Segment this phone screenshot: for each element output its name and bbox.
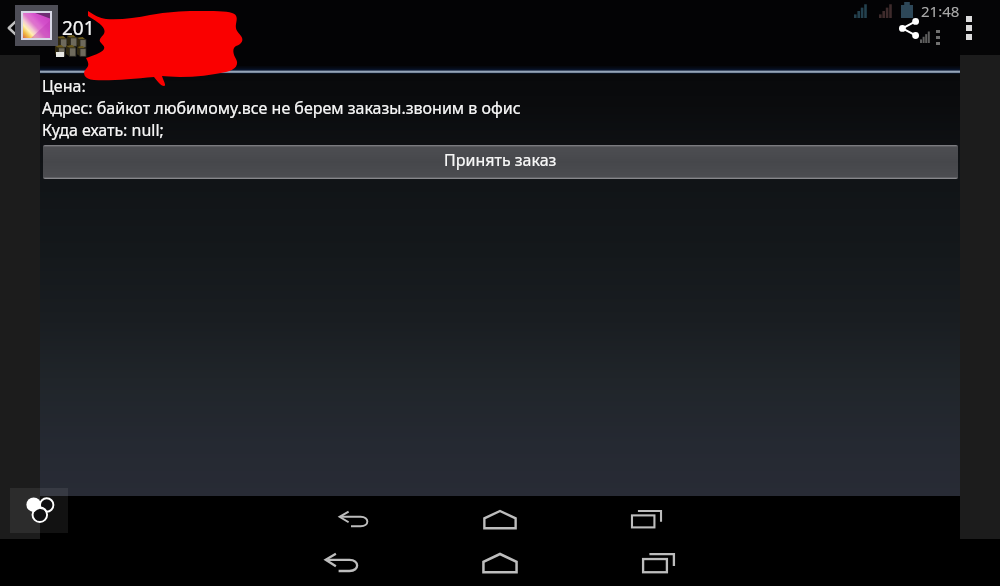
- button[interactable]: Share: [895, 14, 923, 42]
- button[interactable]: Back: [0, 16, 24, 40]
- button[interactable]: Home: [477, 498, 523, 541]
- staticText: Адрес: байкот любимому.все не берем зака…: [42, 97, 521, 119]
- button[interactable]: More options: [952, 8, 986, 48]
- staticText: Цена:: [42, 75, 86, 97]
- staticText: 201: [62, 15, 95, 41]
- staticText: Куда ехать: null;: [42, 119, 164, 141]
- button[interactable]: Back: [331, 498, 377, 541]
- staticText: Принять заказ: [444, 149, 557, 171]
- button[interactable]: Recent apps: [623, 497, 669, 540]
- button[interactable]: Floating menu: [10, 488, 68, 533]
- button[interactable]: Home: [477, 540, 523, 586]
- button[interactable]: Принять заказ: [43, 145, 958, 179]
- button[interactable]: Recent apps: [635, 540, 681, 586]
- button[interactable]: Back: [319, 540, 365, 586]
- staticText: 21:48: [921, 1, 960, 21]
